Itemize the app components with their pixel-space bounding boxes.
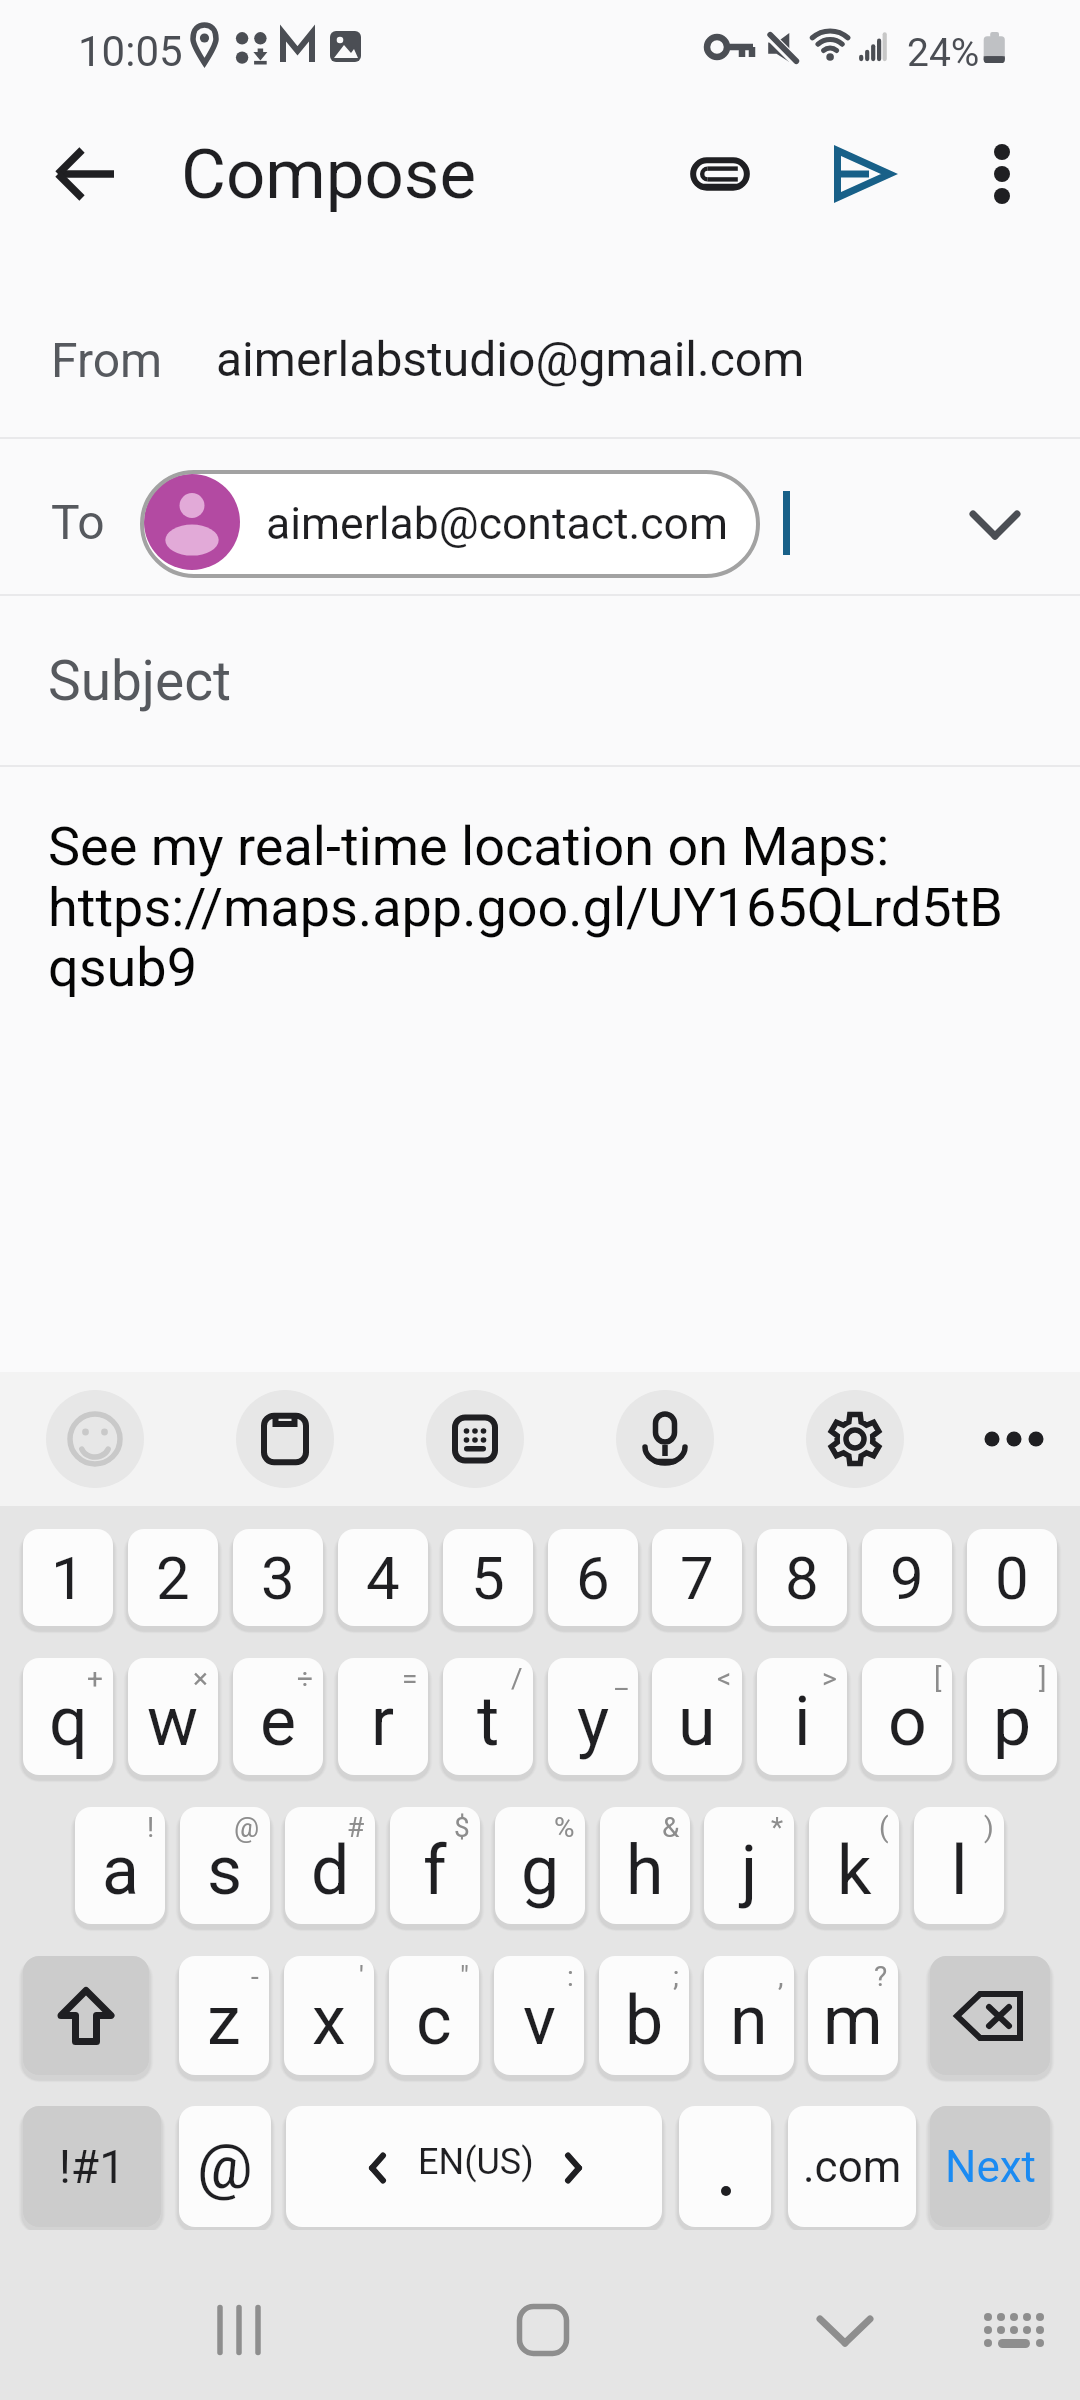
button[interactable]: 0 (967, 1529, 1057, 1626)
button[interactable]: To (0, 439, 1080, 595)
button[interactable]: Home (483, 2270, 603, 2390)
button[interactable]: , (704, 1956, 794, 2075)
button[interactable]: Period (679, 2106, 771, 2227)
button[interactable]: .com (788, 2106, 916, 2227)
button[interactable]: Space (286, 2106, 662, 2227)
button[interactable]: & (600, 1807, 690, 1924)
button[interactable]: ÷ (233, 1658, 323, 1775)
staticText: f (423, 1831, 447, 1911)
button[interactable]: * (704, 1807, 794, 1924)
button[interactable]: ? (808, 1956, 898, 2075)
button[interactable]: See my real-time location on Maps: https… (0, 767, 1080, 1367)
staticText: Subject (48, 649, 231, 713)
staticText: $ (454, 1811, 470, 1844)
staticText: 10:05 (78, 27, 183, 76)
staticText: 5 (471, 1543, 505, 1613)
button[interactable]: ' (284, 1956, 374, 2075)
staticText: aimerlabstudio@gmail.com (216, 331, 805, 387)
button[interactable]: 8 (757, 1529, 847, 1626)
staticText: % (554, 1811, 575, 1844)
button[interactable]: " (389, 1956, 479, 2075)
button[interactable]: ) (914, 1807, 1004, 1924)
staticText: z (207, 1981, 241, 2061)
button[interactable]: 7 (652, 1529, 742, 1626)
button[interactable]: # (285, 1807, 375, 1924)
button[interactable]: Attach file (660, 114, 780, 234)
button[interactable]: Delete (930, 1956, 1050, 2075)
button[interactable]: Numbers (676, 1372, 810, 1506)
button[interactable]: Recent apps (179, 2270, 299, 2390)
staticText: aimerlab@contact.com (266, 498, 728, 550)
staticText: # (347, 1811, 365, 1844)
staticText: 1 (51, 1543, 85, 1613)
staticText: 7 (680, 1543, 714, 1613)
staticText: & (662, 1811, 680, 1844)
staticText: d (311, 1831, 350, 1911)
button[interactable]: Send (803, 114, 923, 234)
button[interactable]: 1 (23, 1529, 113, 1626)
button[interactable]: = (338, 1658, 428, 1775)
button[interactable]: ! (75, 1807, 165, 1924)
button[interactable]: 5 (443, 1529, 533, 1626)
button[interactable]: 4 (338, 1529, 428, 1626)
button[interactable]: More options (942, 114, 1062, 234)
button[interactable]: !#1 (23, 2106, 161, 2227)
button[interactable]: ] (967, 1658, 1057, 1775)
button[interactable]: Hide keyboard (785, 2270, 905, 2390)
staticText: @ (197, 2130, 253, 2203)
button[interactable]: Voice input (1000, 1372, 1080, 1506)
staticText: k (837, 1831, 872, 1911)
button[interactable]: % (495, 1807, 585, 1924)
button[interactable]: Switch keyboard (954, 2270, 1074, 2390)
button[interactable]: Subject (0, 596, 1080, 765)
staticText: 24% (907, 30, 980, 76)
staticText: See my real-time location on Maps: https… (48, 815, 1003, 999)
staticText: r (371, 1682, 395, 1762)
button[interactable]: @ (179, 2106, 271, 2227)
staticText: ! (147, 1811, 155, 1844)
staticText: m (823, 1981, 883, 2061)
staticText: y (577, 1682, 610, 1762)
staticText: h (626, 1831, 664, 1911)
button[interactable]: Navigate up (26, 114, 146, 234)
staticText: .com (803, 2141, 902, 2193)
staticText: 6 (576, 1543, 610, 1613)
button[interactable]: ; (599, 1956, 689, 2075)
button[interactable]: Emoji (28, 1372, 162, 1506)
staticText: EN(US) (418, 2141, 534, 2183)
button[interactable]: 6 (548, 1529, 638, 1626)
button[interactable]: / (443, 1658, 533, 1775)
button[interactable]: 3 (233, 1529, 323, 1626)
button[interactable]: Clipboard (352, 1372, 486, 1506)
button[interactable]: Next (930, 2106, 1050, 2227)
button[interactable]: 2 (128, 1529, 218, 1626)
button[interactable]: - (179, 1956, 269, 2075)
staticText: ' (359, 1960, 364, 1993)
staticText: w (147, 1682, 199, 1762)
button[interactable]: $ (390, 1807, 480, 1924)
button[interactable]: > (757, 1658, 847, 1775)
button[interactable]: × (128, 1658, 218, 1775)
staticText: ] (1039, 1662, 1047, 1695)
staticText: 3 (261, 1543, 295, 1613)
staticText: q (49, 1682, 88, 1762)
staticText: To (51, 494, 105, 550)
button[interactable]: : (494, 1956, 584, 2075)
button[interactable]: < (652, 1658, 742, 1775)
button[interactable]: 9 (862, 1529, 952, 1626)
button[interactable]: _ (548, 1658, 638, 1775)
button[interactable]: aimerlab@contact.com (140, 470, 760, 578)
button[interactable]: [ (862, 1658, 952, 1775)
button[interactable]: @ (180, 1807, 270, 1924)
button[interactable]: + (23, 1658, 113, 1775)
button[interactable]: From (0, 300, 1080, 439)
button[interactable]: ( (809, 1807, 899, 1924)
staticText: x (312, 1981, 346, 2061)
button[interactable]: Shift (23, 1956, 149, 2075)
staticText: Next (945, 2141, 1036, 2193)
staticText: 2 (156, 1543, 190, 1613)
staticText: [ (934, 1662, 942, 1695)
staticText: > (822, 1662, 837, 1695)
staticText: From (51, 332, 163, 388)
button[interactable]: Show more recipients (935, 464, 1055, 584)
